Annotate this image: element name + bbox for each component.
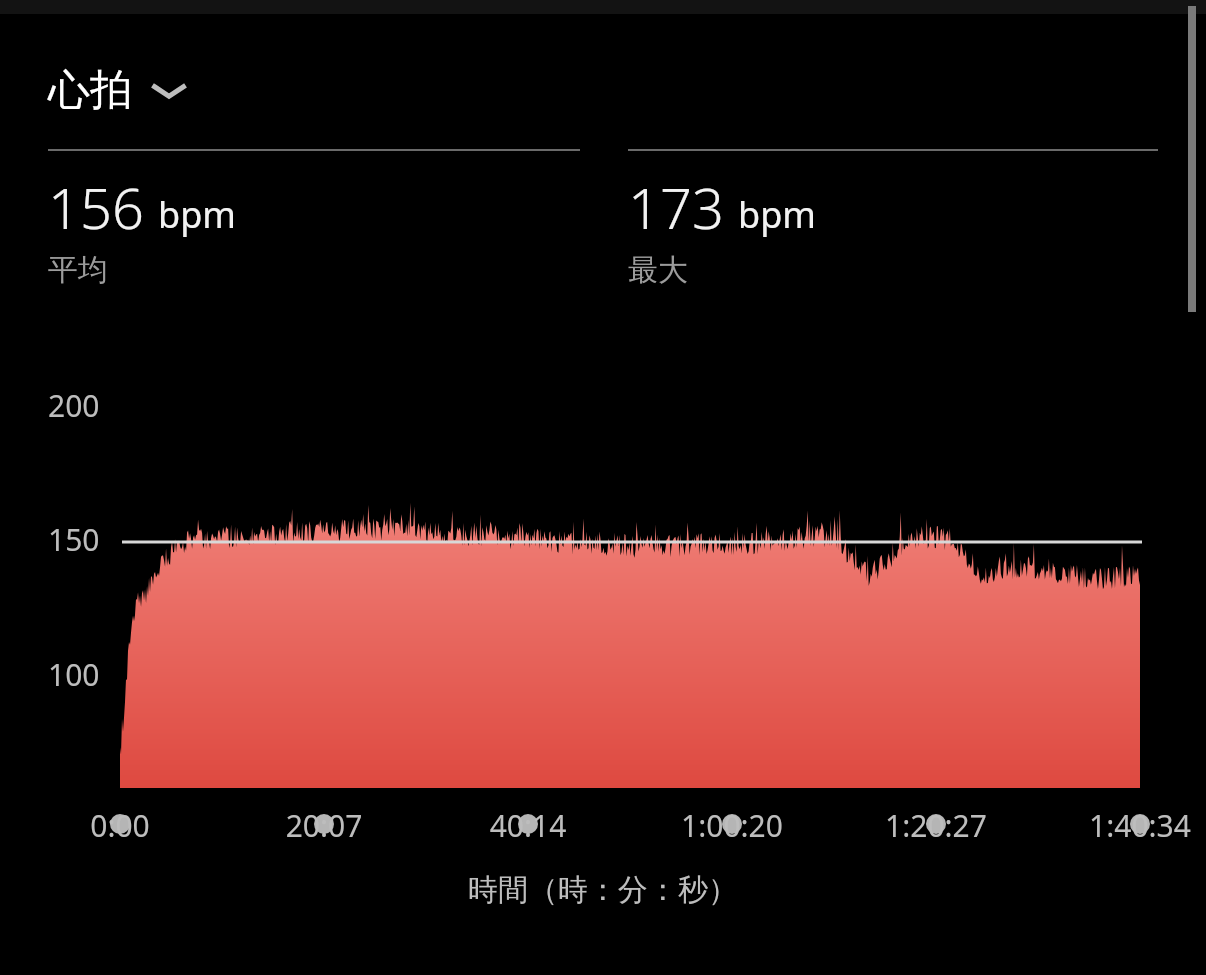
button[interactable]: 173 [580,149,1206,289]
button[interactable]: 156 [0,149,580,289]
other: Expand [150,79,188,103]
staticText: 1:00:20 [622,805,842,846]
staticText: 40:14 [418,805,638,846]
staticText: 1:20:27 [826,805,1046,846]
button[interactable]: 心拍 [48,64,188,117]
staticText: 平均 [48,251,108,289]
staticText: 0:00 [10,805,230,846]
staticText: 173 [628,169,724,245]
staticText: bpm [158,190,236,239]
staticText: 1:40:34 [1030,805,1206,846]
staticText: 心拍 [48,64,132,117]
staticText: 100 [48,654,100,695]
staticText: 最大 [628,251,688,289]
staticText: 時間（時：分：秒） [0,871,1206,909]
staticText: 150 [48,519,100,560]
staticText: 156 [48,169,144,245]
staticText: 200 [48,385,100,426]
staticText: bpm [738,190,816,239]
staticText: 20:07 [214,805,434,846]
